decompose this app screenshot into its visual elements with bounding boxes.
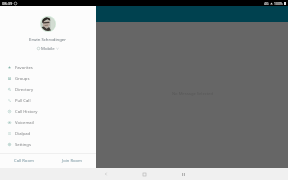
button[interactable]: Dialpad xyxy=(0,128,96,139)
staticText: Dialpad xyxy=(15,131,31,137)
staticText: Call Room xyxy=(14,158,34,164)
staticText: Groups xyxy=(15,76,30,82)
button[interactable]: Home xyxy=(125,168,164,180)
staticText: Call History xyxy=(15,109,38,115)
staticText: Join Room xyxy=(62,158,83,164)
staticText: Voicemail xyxy=(15,120,34,126)
staticText: Directory xyxy=(15,87,34,93)
button[interactable]: Call History xyxy=(0,106,96,117)
staticText: Pull Call xyxy=(15,98,31,104)
button[interactable]: Recents xyxy=(164,168,203,180)
button[interactable]: Call Room xyxy=(0,154,48,167)
staticText: 08:39 xyxy=(2,1,13,6)
staticText: Erwin Schrodinger xyxy=(29,36,67,42)
staticText: Favorites xyxy=(15,65,33,71)
button[interactable]: Settings xyxy=(0,139,96,150)
staticText: 4G xyxy=(264,1,269,6)
button[interactable]: Voicemail xyxy=(0,117,96,128)
button[interactable]: Groups xyxy=(0,73,96,84)
button[interactable]: Directory xyxy=(0,84,96,95)
staticText: Mobile xyxy=(41,45,55,51)
button[interactable]: Pull Call xyxy=(0,95,96,106)
staticText: 100% xyxy=(274,1,283,6)
staticText: Settings xyxy=(15,142,31,148)
button[interactable]: Join Room xyxy=(48,154,96,167)
button[interactable]: Favorites xyxy=(0,62,96,73)
